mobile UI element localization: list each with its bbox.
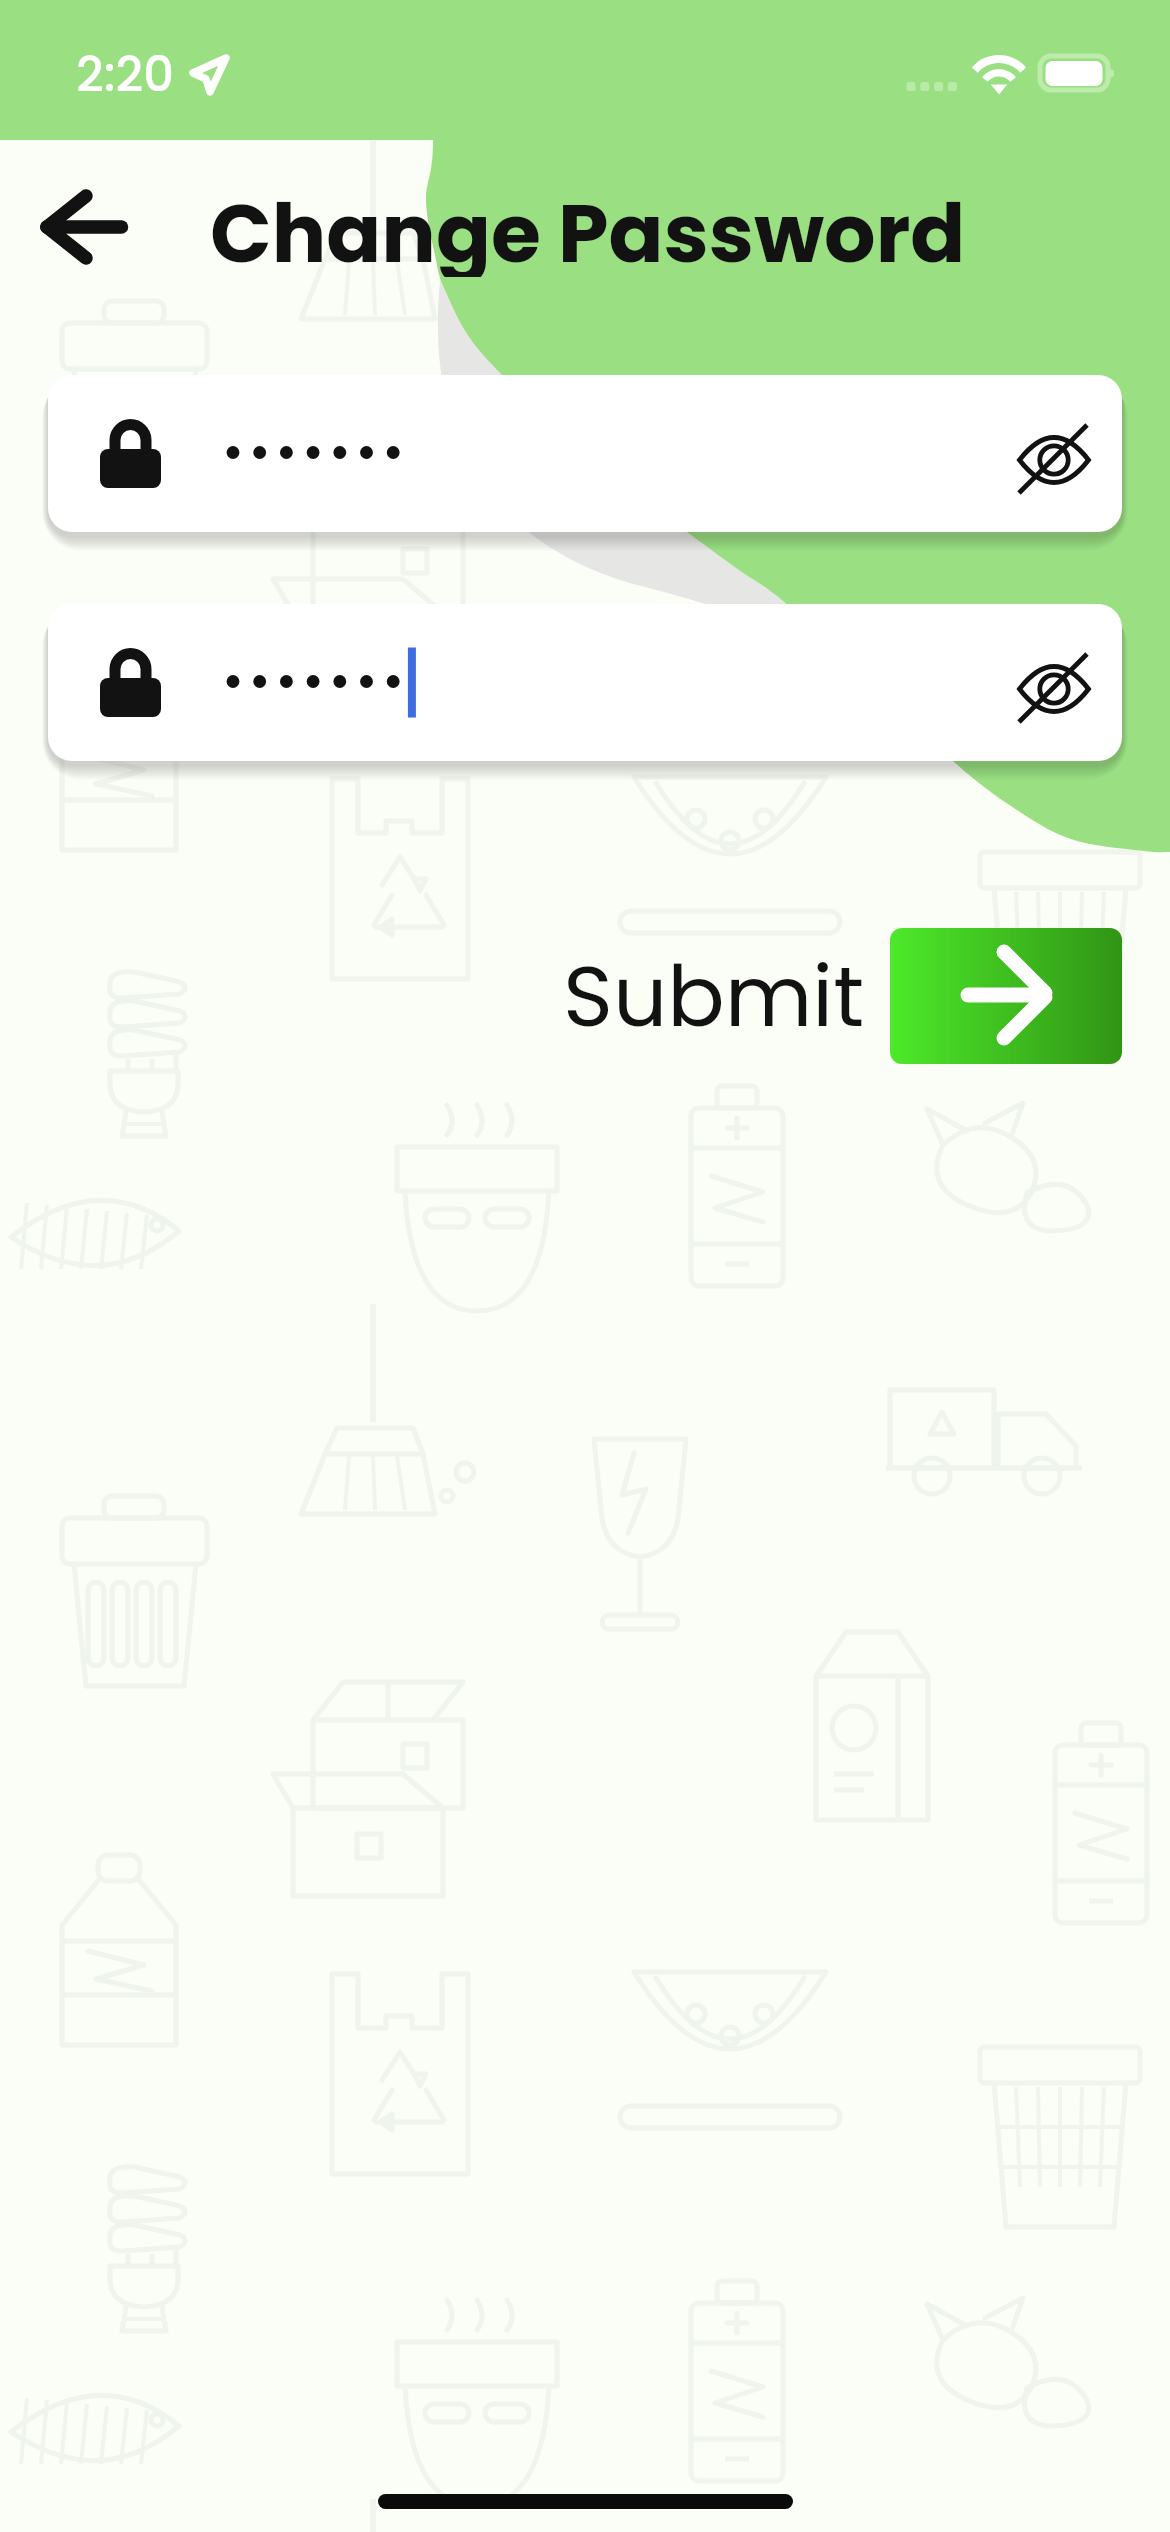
button[interactable]: Submit: [563, 937, 865, 1056]
button[interactable]: Toggle password visibility: [992, 618, 1116, 748]
button[interactable]: Toggle password visibility: [48, 375, 1122, 532]
button[interactable]: Back: [20, 177, 154, 277]
staticText: Change Password: [210, 177, 966, 277]
button[interactable]: Toggle password visibility: [48, 604, 1122, 761]
button[interactable]: Submit: [890, 928, 1122, 1064]
button[interactable]: Toggle password visibility: [992, 389, 1116, 519]
staticText: 2:20: [76, 41, 174, 108]
